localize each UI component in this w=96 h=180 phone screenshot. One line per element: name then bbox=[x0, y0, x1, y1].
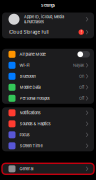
staticText: Wi-Fi bbox=[19, 63, 29, 68]
staticText: Sounds & Haptics bbox=[19, 121, 50, 126]
staticText: Airplane Mode bbox=[19, 52, 45, 57]
staticText: Bluetooth bbox=[19, 74, 35, 79]
button[interactable]: Airplane Mode bbox=[2, 49, 94, 60]
button[interactable]: Sounds & Haptics bbox=[2, 118, 94, 129]
staticText: ! bbox=[81, 29, 82, 35]
button[interactable]: Personal Hotspot bbox=[2, 93, 94, 104]
staticText: Focus bbox=[19, 132, 29, 137]
staticText: Notifications bbox=[19, 110, 40, 115]
staticText: Personal Hotspot bbox=[19, 96, 49, 101]
staticText: Off bbox=[79, 85, 84, 90]
staticText: & Purchases bbox=[24, 19, 44, 24]
button[interactable]: Mobile Data bbox=[2, 82, 94, 93]
staticText: Mobile Data bbox=[19, 85, 40, 90]
button[interactable]: General bbox=[2, 163, 94, 174]
button[interactable]: Screen Time bbox=[2, 140, 94, 151]
staticText: Screen Time bbox=[19, 143, 42, 148]
staticText: iCloud Storage Full bbox=[8, 29, 48, 35]
button[interactable]: Wi-Fi bbox=[2, 60, 94, 71]
staticText: General bbox=[19, 166, 33, 171]
staticText: On bbox=[79, 74, 84, 79]
button[interactable]: Focus bbox=[2, 129, 94, 140]
button[interactable]: Bluetooth bbox=[2, 71, 94, 82]
staticText: Nayak bbox=[73, 63, 84, 68]
button[interactable]: Notifications bbox=[2, 107, 94, 118]
staticText: Off bbox=[79, 96, 84, 101]
staticText: Settings bbox=[41, 3, 55, 8]
button[interactable]: iCloud Storage Full bbox=[2, 26, 94, 38]
staticText: Apple ID, iCloud, Media bbox=[24, 14, 64, 19]
button[interactable]: Apple ID, iCloud, Media bbox=[2, 12, 94, 26]
